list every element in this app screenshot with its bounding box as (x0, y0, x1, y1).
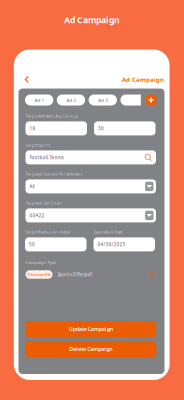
staticText: 60422 (29, 212, 44, 218)
staticText: Ad 3 (98, 97, 107, 103)
staticText: Update Campaign (69, 325, 113, 333)
staticText: Ad Campaign (64, 14, 120, 26)
staticText: Ad Campaign (122, 75, 164, 83)
staticText: Football, Tennis (29, 154, 63, 160)
button[interactable]: Ad 4 (120, 94, 141, 105)
staticText: 30 (98, 125, 104, 131)
staticText: 50 (29, 241, 35, 247)
button[interactable]: Back (20, 71, 34, 87)
staticText: Delete Campaign (69, 345, 112, 353)
button[interactable]: Update Campaign (25, 321, 156, 337)
button[interactable]: Remove file (148, 270, 156, 278)
button[interactable]: Add ad (146, 94, 156, 105)
button[interactable]: Ad 3 (89, 94, 117, 105)
button[interactable]: Ad 2 (57, 94, 85, 105)
staticText: Campaign Flyer (25, 260, 56, 265)
staticText: Target Radius (in miles) (25, 229, 70, 235)
staticText: Choose file (27, 272, 50, 277)
staticText: All (29, 183, 34, 189)
staticText: Expiration Date (93, 229, 122, 235)
button[interactable]: Ad 1 (25, 94, 53, 105)
button[interactable]: Choose file (25, 270, 52, 279)
staticText: 04/30/2025 (97, 241, 125, 247)
button[interactable]: Delete Campaign (25, 341, 156, 357)
staticText: Target Sport (25, 142, 49, 148)
button[interactable]: 60422 (25, 208, 156, 222)
staticText: 18 (29, 125, 35, 131)
staticText: Ad 2 (66, 97, 75, 103)
staticText: Targeted Zip Code (25, 200, 61, 206)
staticText: Target Athlete's Age Group (25, 113, 78, 119)
staticText: Sports Offer.pdf (57, 271, 92, 278)
staticText: Ad 1 (35, 97, 44, 103)
staticText: Targeted Gender for Athlete's (25, 171, 82, 177)
button[interactable]: All (25, 179, 156, 193)
